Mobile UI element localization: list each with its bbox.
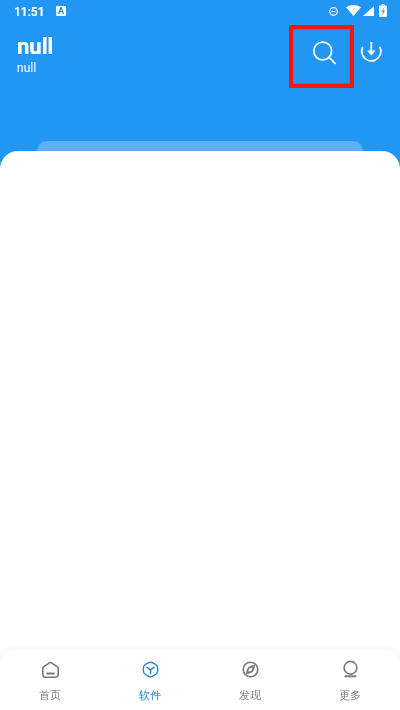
button[interactable]: 更多 <box>300 650 400 710</box>
staticText: null <box>17 61 37 75</box>
staticText: 首页 <box>39 688 61 702</box>
button[interactable]: 发现 <box>200 650 300 710</box>
staticText: 11:51 <box>14 5 45 19</box>
button[interactable]: Downloads <box>354 27 389 75</box>
button[interactable]: 软件 <box>100 650 200 710</box>
button[interactable]: 首页 <box>0 650 100 710</box>
staticText: 软件 <box>139 688 161 702</box>
staticText: null <box>17 34 54 60</box>
staticText: 发现 <box>239 688 261 702</box>
button[interactable]: Search <box>289 25 354 87</box>
staticText: 更多 <box>339 688 361 702</box>
staticText: A <box>58 6 65 16</box>
